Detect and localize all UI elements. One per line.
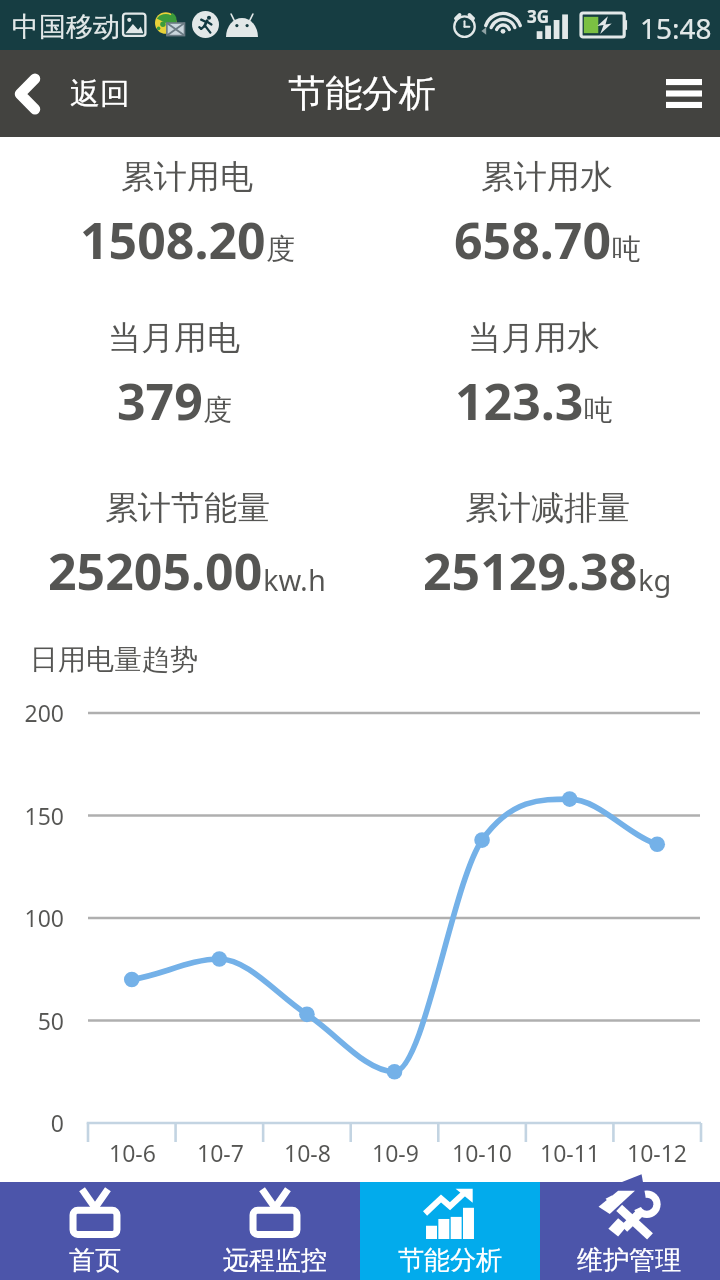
staticText: 远程监控 <box>223 1244 327 1277</box>
staticText: 50 <box>0 1005 64 1036</box>
staticText: 1508.20 <box>80 206 266 274</box>
staticText: kg <box>638 560 672 599</box>
staticText: 日用电量趋势 <box>30 642 198 677</box>
staticText: 累计用水 <box>481 156 613 198</box>
staticText: 10-9 <box>372 1137 419 1168</box>
staticText: 吨 <box>584 392 613 429</box>
staticText: 累计减排量 <box>465 487 630 529</box>
staticText: 中国移动 <box>12 10 120 44</box>
button[interactable]: 当月用水 <box>354 317 714 435</box>
staticText: 当月用水 <box>468 317 600 359</box>
staticText: 当月用电 <box>108 317 240 359</box>
button[interactable]: 远程监控 <box>180 1182 360 1280</box>
staticText: 累计用电 <box>121 156 253 198</box>
staticText: 10-7 <box>197 1137 244 1168</box>
staticText: kw.h <box>263 560 326 599</box>
staticText: 150 <box>0 800 64 831</box>
staticText: 累计节能量 <box>105 487 270 529</box>
staticText: 10-12 <box>627 1137 688 1168</box>
button[interactable]: 累计减排量 <box>367 487 720 605</box>
staticText: 10-8 <box>284 1137 331 1168</box>
staticText: 200 <box>0 697 64 728</box>
button[interactable]: 首页 <box>0 1182 180 1280</box>
staticText: 0 <box>0 1107 64 1138</box>
button[interactable]: 节能分析 <box>360 1182 540 1280</box>
staticText: 15:48 <box>640 9 712 47</box>
staticText: 10-6 <box>109 1137 156 1168</box>
staticText: 25205.00 <box>48 537 263 605</box>
staticText: 度 <box>203 392 232 429</box>
button[interactable]: 当月用电 <box>0 317 354 435</box>
button[interactable]: Back 返回 <box>0 50 720 137</box>
staticText: 维护管理 <box>577 1244 681 1277</box>
staticText: 3G <box>527 5 550 28</box>
button[interactable]: 累计用电 <box>7 156 367 274</box>
staticText: 123.3 <box>455 367 584 435</box>
staticText: 返回 <box>70 75 130 113</box>
button[interactable]: 累计节能量 <box>7 487 367 605</box>
staticText: 25129.38 <box>423 537 638 605</box>
button[interactable]: Menu <box>628 50 720 137</box>
staticText: 首页 <box>69 1244 121 1277</box>
staticText: 节能分析 <box>288 70 436 117</box>
staticText: 10-11 <box>540 1137 601 1168</box>
staticText: 658.70 <box>454 206 612 274</box>
staticText: 379 <box>117 367 203 435</box>
staticText: 100 <box>0 902 64 933</box>
staticText: 度 <box>266 231 295 268</box>
staticText: 10-10 <box>452 1137 513 1168</box>
staticText: 节能分析 <box>398 1244 502 1277</box>
staticText: 吨 <box>612 231 641 268</box>
button[interactable]: 累计用水 <box>367 156 720 274</box>
button[interactable]: 维护管理 <box>540 1182 720 1280</box>
